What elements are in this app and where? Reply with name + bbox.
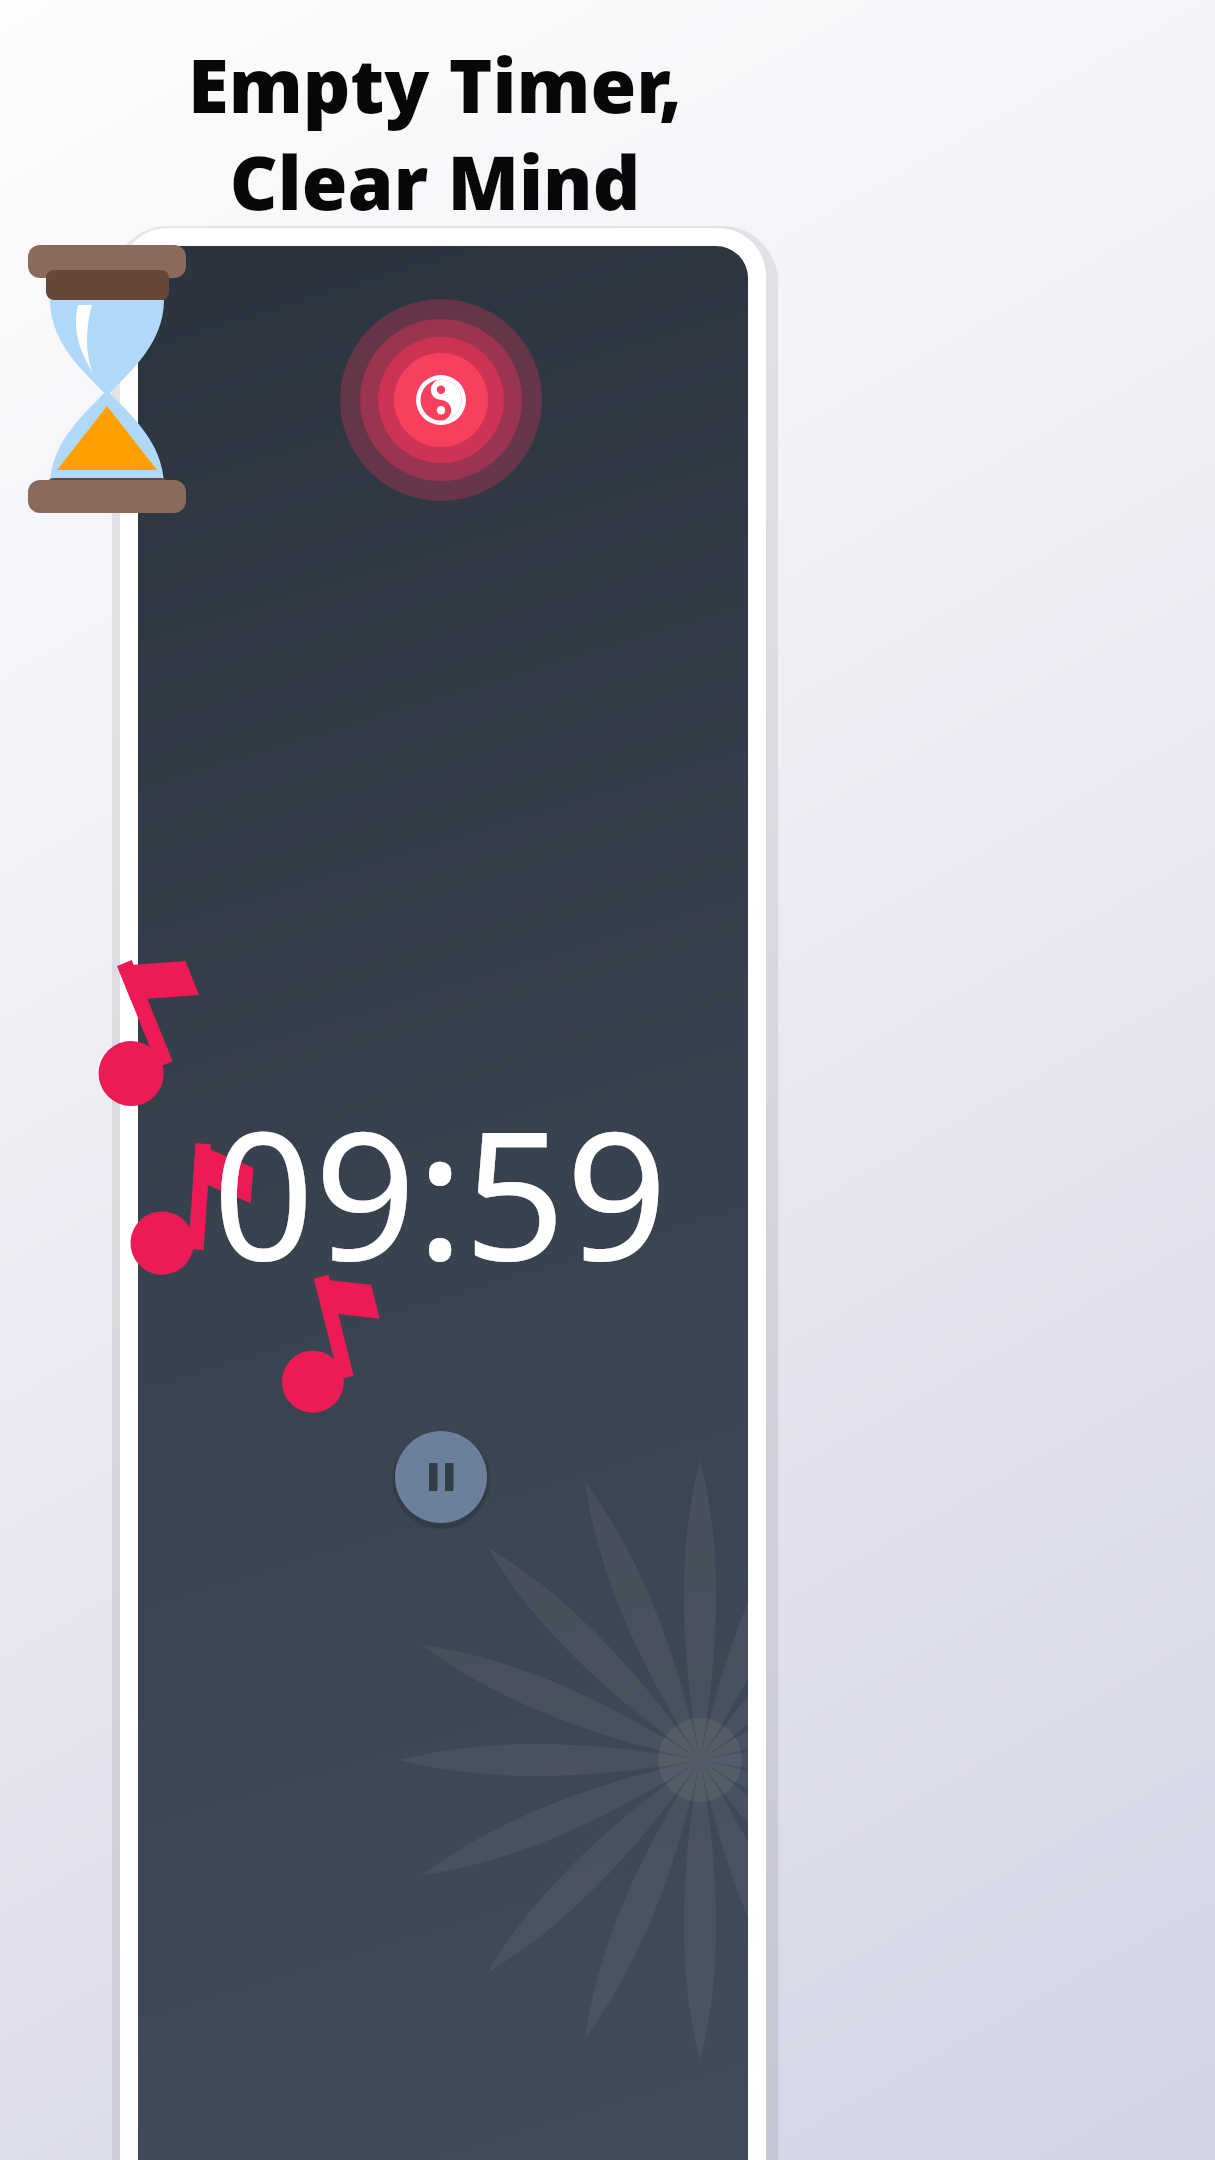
staticText: Empty Timer, Clear Mind: [85, 34, 785, 232]
button[interactable]: Ambient sound: [340, 298, 540, 498]
staticText: 09:59: [130, 1070, 750, 1312]
button[interactable]: Pause timer: [565, 1955, 677, 2067]
